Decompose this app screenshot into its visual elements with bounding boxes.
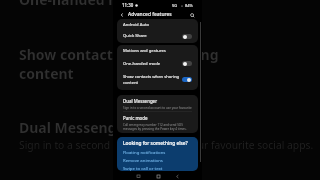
staticText: 11:30 [122, 2, 134, 8]
button[interactable]: Panic mode [117, 112, 198, 133]
staticText: Android Auto [123, 22, 150, 28]
button[interactable]: Android Auto [117, 19, 198, 30]
staticText: Dual Messenger [19, 118, 132, 137]
button[interactable]: Show contacts when sharing content [117, 70, 198, 89]
staticText: 5G [172, 3, 178, 8]
button[interactable]: Floating notifications [123, 149, 166, 155]
button[interactable]: Navigate up [118, 11, 126, 19]
button[interactable]: Search [188, 11, 196, 19]
staticText: Sign in to a second account to use your … [19, 138, 314, 152]
staticText: Sign in to a second account to use your … [123, 106, 192, 110]
button[interactable]: Remove animations [123, 157, 163, 163]
staticText: Looking for something else? [123, 140, 188, 147]
button[interactable]: Motions and gestures [117, 45, 198, 57]
staticText: One-handed mode [19, 0, 148, 9]
staticText: Quick Share [123, 33, 180, 39]
staticText: One-handed mode [123, 61, 180, 67]
button[interactable]: Dual Messenger [117, 95, 198, 111]
button[interactable]: Home [154, 172, 162, 180]
staticText: 84% [185, 3, 193, 8]
staticText: Panic mode [123, 115, 148, 121]
button[interactable]: Swipe to call or text [123, 165, 163, 171]
staticText: Call emergency number 112 and send SOS m… [123, 123, 192, 131]
staticText: Show contacts when sharing content [123, 74, 180, 85]
button[interactable]: One-handed mode [117, 57, 198, 70]
button[interactable]: Quick Share [117, 30, 198, 42]
staticText: Motions and gestures [123, 48, 166, 54]
staticText: Show contacts when sharing content [19, 45, 219, 83]
button[interactable]: Back [173, 172, 181, 180]
staticText: Dual Messenger [123, 98, 157, 104]
button[interactable]: Recent apps [134, 172, 142, 180]
staticText: Advanced features [128, 11, 172, 18]
